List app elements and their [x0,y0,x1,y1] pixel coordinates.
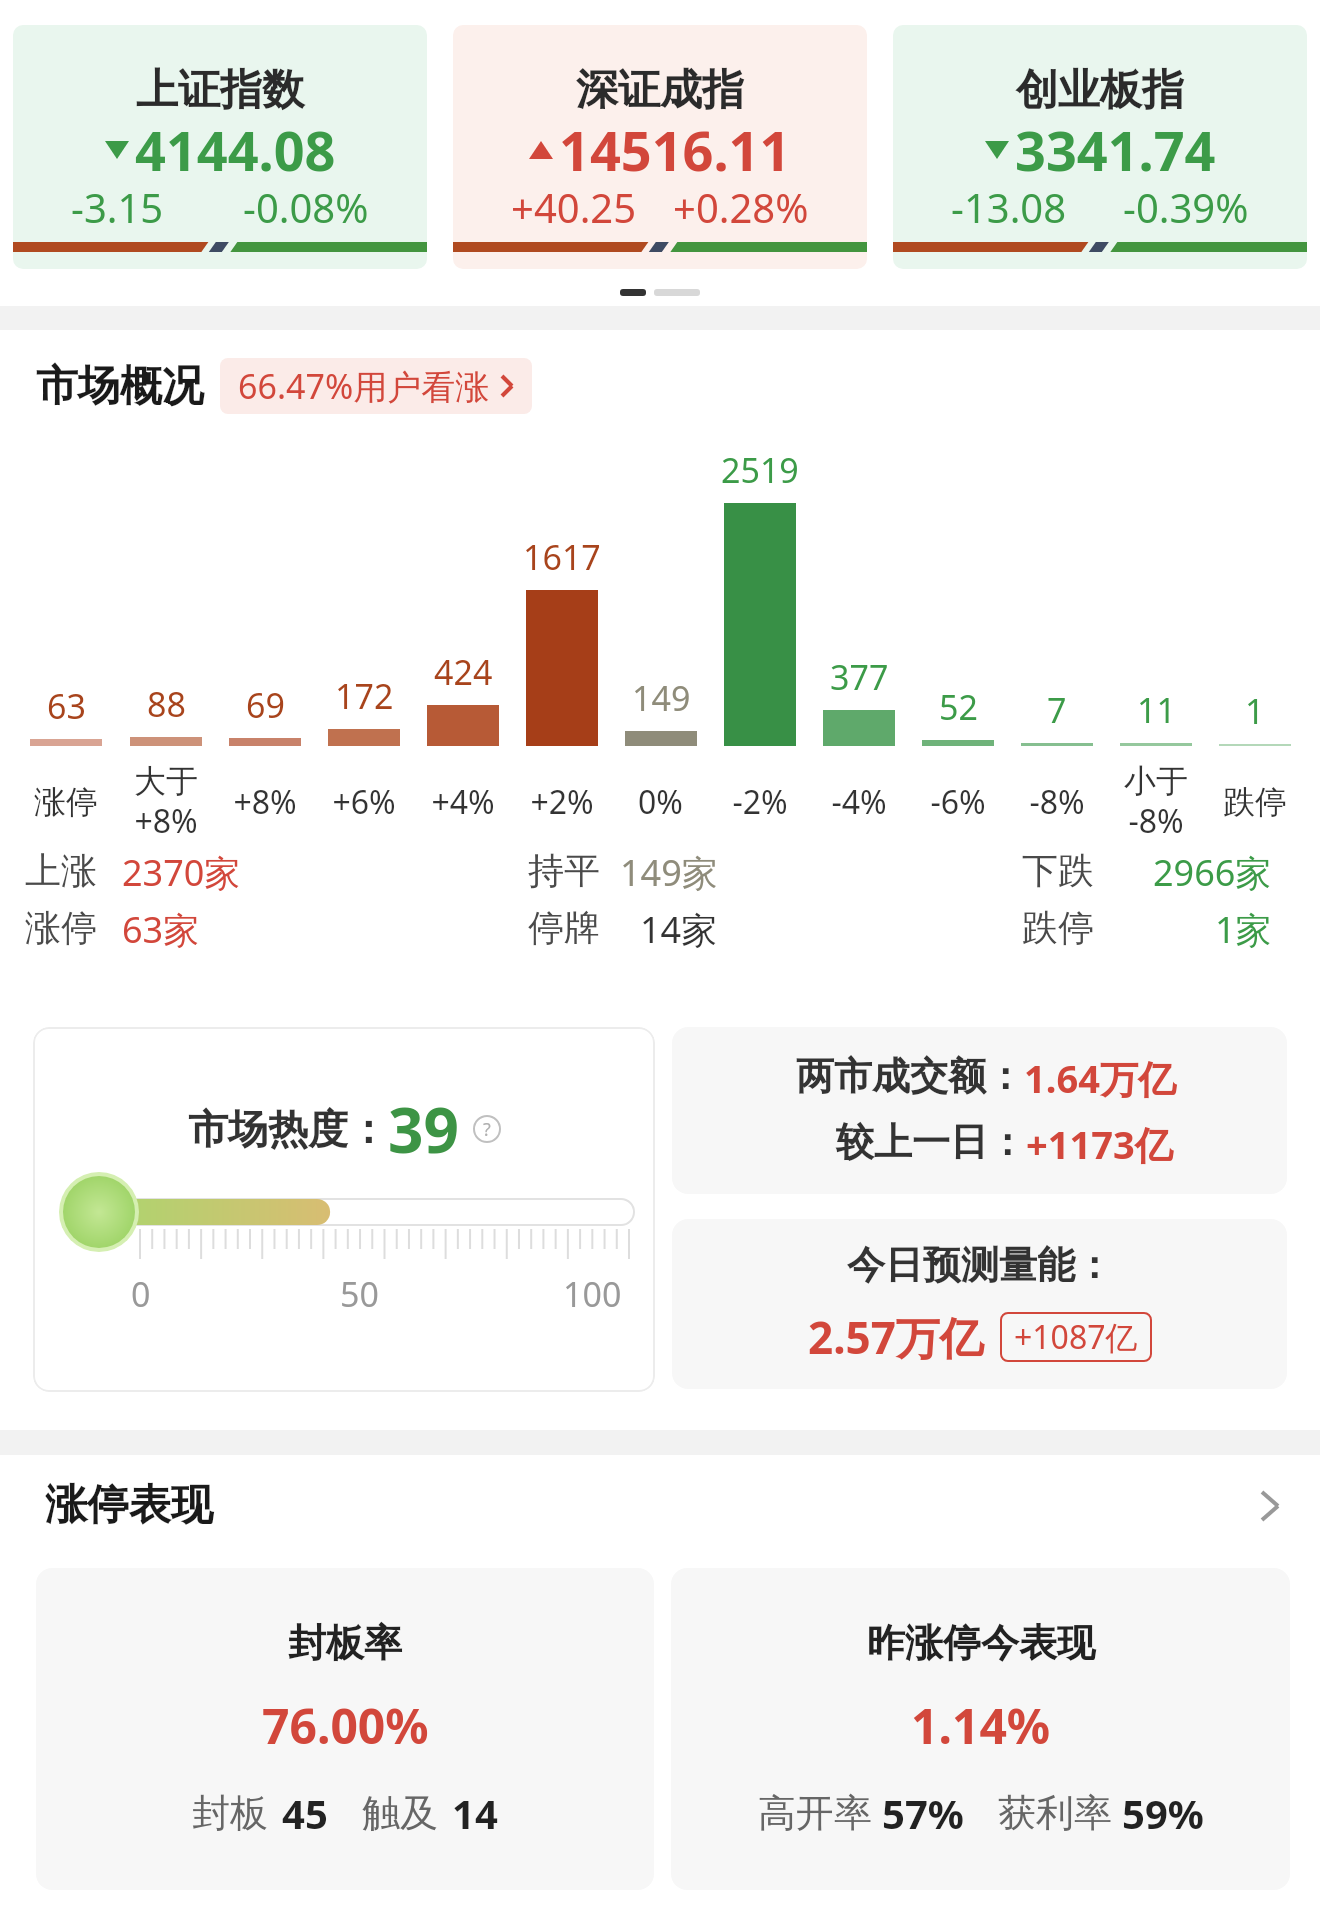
button[interactable]: 封板率 [36,1568,654,1890]
staticText: 1.14% [911,1693,1051,1758]
staticText: 88 [147,681,186,727]
staticText: 377 [830,654,889,700]
staticText: 149 [632,675,691,721]
staticText: 持平 [528,848,600,893]
staticText: 涨停 [25,905,97,950]
button[interactable]: 昨涨停今表现 [671,1568,1290,1890]
staticText: 0% [638,780,683,824]
staticText: 封板 [192,1789,268,1837]
button[interactable]: 市场热度： [33,1027,655,1392]
staticText: 69 [246,682,285,728]
staticText: -6% [930,780,986,824]
staticText: 57% [882,1786,964,1840]
staticText: 66.47%用户看涨 [238,363,490,409]
staticText: 封板率 [288,1619,402,1667]
button[interactable] [1260,1488,1280,1524]
staticText: 跌停 [1223,782,1287,822]
staticText: 14 [452,1786,498,1840]
staticText: +1173亿 [1026,1118,1173,1170]
staticText: 100 [563,1271,622,1317]
staticText: 11 [1137,687,1176,733]
staticText: 2519 [721,447,799,493]
staticText: +2% [530,780,594,824]
staticText: 76.00% [262,1693,429,1758]
staticText: 2966家 [1153,848,1272,897]
staticText: 昨涨停今表现 [867,1619,1095,1667]
staticText: 172 [335,673,394,719]
staticText: -2% [732,780,788,824]
button[interactable]: 两市成交额： [672,1027,1287,1194]
staticText: 59% [1122,1786,1204,1840]
staticText: 较上一日： [836,1118,1026,1166]
staticText: 上证指数 [136,64,304,117]
button[interactable]: 今日预测量能： [672,1219,1287,1389]
staticText: 50 [340,1271,379,1317]
staticText: +40.25 [511,180,637,234]
staticText: 创业板指 [1016,64,1184,117]
staticText: 获利率 [998,1789,1112,1837]
staticText: +4% [431,780,495,824]
staticText: 39 [388,1087,459,1171]
staticText: 涨停 [34,782,98,822]
staticText: 2.57万亿 [808,1307,984,1367]
staticText: +8% [233,780,297,824]
staticText: 7 [1047,687,1067,733]
staticText: 1617 [523,534,601,580]
staticText: ? [483,1117,491,1142]
staticText: 小于 -8% [1124,761,1188,843]
staticText: 大于 +8% [134,761,198,843]
staticText: 4144.08 [135,113,336,187]
staticText: 14家 [640,905,718,954]
button[interactable]: 66.47%用户看涨 [220,358,532,414]
staticText: 跌停 [1022,905,1094,950]
button[interactable]: 深证成指 [453,25,867,269]
staticText: -13.08 [951,180,1067,234]
staticText: -8% [1029,780,1085,824]
staticText: 149家 [620,848,718,897]
staticText: 两市成交额： [796,1052,1024,1100]
staticText: -0.08% [243,180,369,234]
staticText: -0.39% [1123,180,1249,234]
staticText: 14516.11 [559,113,791,187]
staticText: 0 [131,1271,151,1317]
staticText: 1 [1245,688,1265,734]
staticText: 触及 [362,1789,438,1837]
staticText: -3.15 [71,180,164,234]
staticText: +1087亿 [1014,1315,1138,1359]
staticText: 63 [47,683,86,729]
staticText: 高开率 [758,1789,872,1837]
staticText: 52 [939,684,978,730]
staticText: 上涨 [25,848,97,893]
button[interactable]: 创业板指 [893,25,1307,269]
staticText: 今日预测量能： [847,1241,1113,1289]
staticText: 市场热度： [188,1104,388,1154]
staticText: 下跌 [1022,848,1094,893]
staticText: 市场概况 [36,360,204,413]
staticText: 1.64万亿 [1024,1052,1176,1104]
staticText: 45 [282,1786,328,1840]
staticText: 深证成指 [576,64,744,117]
button[interactable]: 上证指数 [13,25,427,269]
staticText: -4% [831,780,887,824]
staticText: +0.28% [673,180,809,234]
staticText: 涨停表现 [45,1479,213,1532]
staticText: 424 [434,649,493,695]
staticText: +6% [332,780,396,824]
staticText: 63家 [122,905,200,954]
staticText: 3341.74 [1015,113,1216,187]
staticText: 2370家 [122,848,241,897]
staticText: 停牌 [528,905,600,950]
staticText: 1家 [1215,905,1272,954]
